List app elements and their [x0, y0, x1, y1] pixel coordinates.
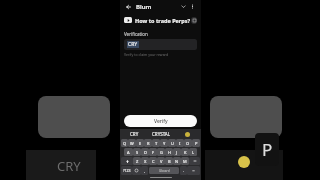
button[interactable]: Space — [149, 167, 179, 174]
staticText: A — [127, 150, 130, 155]
staticText: F — [152, 150, 155, 155]
staticText: T — [155, 141, 158, 146]
staticText: Blum — [136, 3, 152, 11]
staticText: CRY — [130, 131, 139, 137]
button[interactable]: Comma — [141, 166, 148, 175]
button[interactable]: CRY — [121, 131, 148, 137]
button[interactable]: K — [181, 148, 189, 156]
button[interactable]: Q — [121, 139, 128, 147]
button[interactable]: I — [176, 139, 184, 147]
button[interactable] — [174, 132, 200, 137]
staticText: B — [168, 159, 171, 164]
button[interactable]: T — [152, 139, 160, 147]
button[interactable]: CRY — [124, 39, 197, 50]
staticText: ?123 — [123, 168, 131, 173]
staticText: , — [144, 168, 146, 173]
button[interactable]: M — [181, 157, 189, 165]
staticText: L — [192, 150, 195, 155]
staticText: J — [176, 150, 178, 155]
button[interactable]: E — [136, 139, 144, 147]
button[interactable]: D — [141, 148, 149, 156]
button[interactable]: Enter — [187, 166, 200, 175]
button[interactable]: Backspace — [189, 157, 200, 165]
button[interactable]: A — [124, 148, 133, 156]
button[interactable]: V — [157, 157, 165, 165]
staticText: V — [160, 159, 163, 164]
button[interactable]: W — [128, 139, 136, 147]
staticText: CRYSTAL — [152, 131, 171, 137]
staticText: N — [175, 159, 179, 164]
staticText: Z — [136, 159, 139, 164]
button[interactable]: J — [173, 148, 181, 156]
staticText: R — [147, 141, 150, 146]
staticText: U — [171, 141, 174, 146]
button[interactable]: R — [144, 139, 152, 147]
button[interactable]: Back — [124, 2, 133, 11]
staticText: W — [130, 141, 134, 146]
button[interactable]: N — [173, 157, 181, 165]
button[interactable]: Copy — [191, 17, 197, 24]
button[interactable]: X — [141, 157, 149, 165]
button[interactable]: F — [149, 148, 157, 156]
button[interactable]: CRYSTAL — [148, 131, 174, 137]
button[interactable]: P — [192, 139, 200, 147]
staticText: Q — [123, 141, 127, 146]
button[interactable]: Emoji — [132, 166, 141, 175]
staticText: . — [183, 168, 185, 173]
button[interactable]: U — [168, 139, 176, 147]
button[interactable]: O — [184, 139, 192, 147]
button[interactable]: H — [165, 148, 173, 156]
staticText: G — [160, 150, 163, 155]
button[interactable]: S — [133, 148, 141, 156]
staticText: Verify to claim your reward — [124, 52, 169, 57]
staticText: How to trade Perps? — [135, 17, 191, 24]
staticText: Verification — [124, 31, 148, 37]
button[interactable]: Verify — [124, 115, 197, 127]
button[interactable]: G — [157, 148, 165, 156]
staticText: D — [144, 150, 147, 155]
staticText: K — [184, 150, 187, 155]
button[interactable]: C — [149, 157, 157, 165]
staticText: E — [139, 141, 142, 146]
button[interactable]: Z — [133, 157, 141, 165]
button[interactable]: Period — [180, 166, 187, 175]
staticText: P — [195, 141, 198, 146]
staticText: Verify — [154, 118, 168, 125]
staticText: CRY — [128, 41, 138, 48]
button[interactable]: More options — [188, 2, 197, 11]
button[interactable]: How to trade Perps? — [124, 13, 197, 27]
staticText: P — [262, 138, 273, 161]
button[interactable]: Symbols — [121, 166, 132, 175]
staticText: H — [168, 150, 171, 155]
staticText: CRY — [57, 157, 81, 175]
staticText: I — [179, 141, 181, 146]
staticText: O — [186, 141, 190, 146]
staticText: C — [152, 159, 155, 164]
staticText: Y — [163, 141, 166, 146]
staticText: X — [144, 159, 147, 164]
button[interactable]: Expand — [179, 2, 188, 11]
button[interactable]: Shift — [121, 157, 133, 165]
staticText: S — [136, 150, 139, 155]
button[interactable]: L — [189, 148, 197, 156]
staticText: M — [183, 159, 187, 164]
button[interactable]: Y — [160, 139, 168, 147]
button[interactable]: B — [165, 157, 173, 165]
staticText: Gboard — [159, 169, 170, 173]
